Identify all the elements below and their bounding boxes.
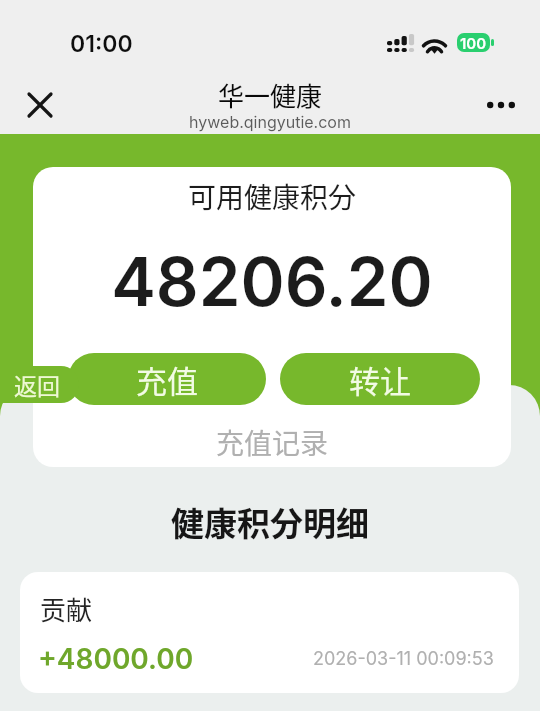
staticText: 贡献 xyxy=(40,590,93,628)
staticText: 100 xyxy=(460,34,487,52)
staticText: 2026-03-11 00:09:53 xyxy=(313,648,494,670)
staticText: +48000.00 xyxy=(38,642,194,676)
other: Wi-Fi xyxy=(423,34,446,53)
button[interactable]: 返回 xyxy=(0,366,79,403)
staticText: 48206.20 xyxy=(33,241,511,322)
button[interactable]: 充值记录 xyxy=(33,422,511,463)
button[interactable]: More options xyxy=(478,82,523,127)
other: Battery 100 percent xyxy=(457,33,497,52)
button[interactable]: 充值 xyxy=(68,353,266,405)
button[interactable]: 转让 xyxy=(280,353,480,405)
staticText: 转让 xyxy=(349,357,411,402)
staticText: 华一健康 xyxy=(0,76,540,114)
button[interactable]: 贡献 xyxy=(20,572,519,693)
staticText: 可用健康积分 xyxy=(33,176,511,217)
button[interactable]: Close xyxy=(17,82,62,127)
staticText: 返回 xyxy=(14,368,60,401)
staticText: 健康积分明细 xyxy=(0,498,540,546)
staticText: 01:00 xyxy=(70,30,133,58)
staticText: 充值 xyxy=(136,357,198,402)
other: Cellular signal xyxy=(387,34,414,52)
staticText: hyweb.qingyutie.com xyxy=(0,112,540,131)
